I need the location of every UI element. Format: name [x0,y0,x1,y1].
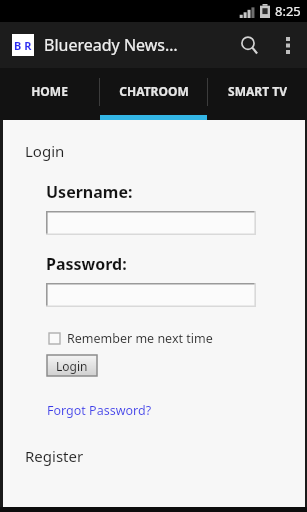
button[interactable]: Login [47,355,97,376]
button[interactable]: CHATROOM [100,68,207,120]
staticText: B R [14,38,32,53]
staticText: Login [56,358,88,374]
staticText: CHATROOM [119,83,189,99]
button[interactable]: Forgot Password? [47,402,152,419]
staticText: SMART TV [228,83,287,99]
button[interactable]: Search [227,23,271,67]
button[interactable] [46,283,256,307]
staticText: Remember me next time [67,330,213,347]
button[interactable] [46,211,256,235]
staticText: 8:25 [275,2,301,20]
button[interactable]: SMART TV [208,68,307,120]
staticText: Password: [46,253,127,275]
staticText: Login [25,141,65,161]
staticText: Username: [46,181,133,203]
button[interactable]: Remember me next time [49,330,213,347]
button[interactable]: More options [271,28,305,62]
staticText: HOME [31,83,68,99]
button[interactable]: Register [25,446,84,466]
staticText: Blueready News… [44,34,227,56]
button[interactable]: HOME [0,68,99,120]
